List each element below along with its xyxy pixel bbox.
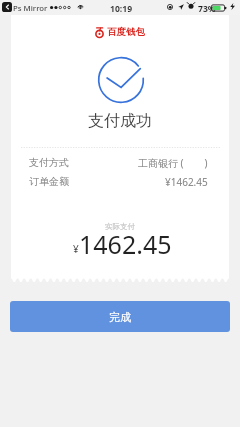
button[interactable]: Back: [2, 2, 12, 12]
button[interactable]: 完成: [10, 301, 230, 332]
staticText: 工商银行 ( ): [138, 156, 208, 169]
staticText: Ps Mirror: [13, 3, 48, 14]
staticText: 支付方式: [29, 156, 69, 169]
staticText: ¥: [73, 242, 79, 256]
staticText: 10:19: [110, 3, 133, 15]
staticText: 实际支付: [105, 222, 135, 231]
staticText: ¥1462.45: [165, 175, 208, 188]
staticText: 百度钱包: [107, 26, 145, 38]
staticText: 支付成功: [88, 111, 152, 129]
staticText: 订单金额: [29, 175, 69, 188]
staticText: 完成: [109, 310, 131, 324]
staticText: 73%: [198, 3, 216, 15]
staticText: 1462.45: [79, 227, 172, 261]
